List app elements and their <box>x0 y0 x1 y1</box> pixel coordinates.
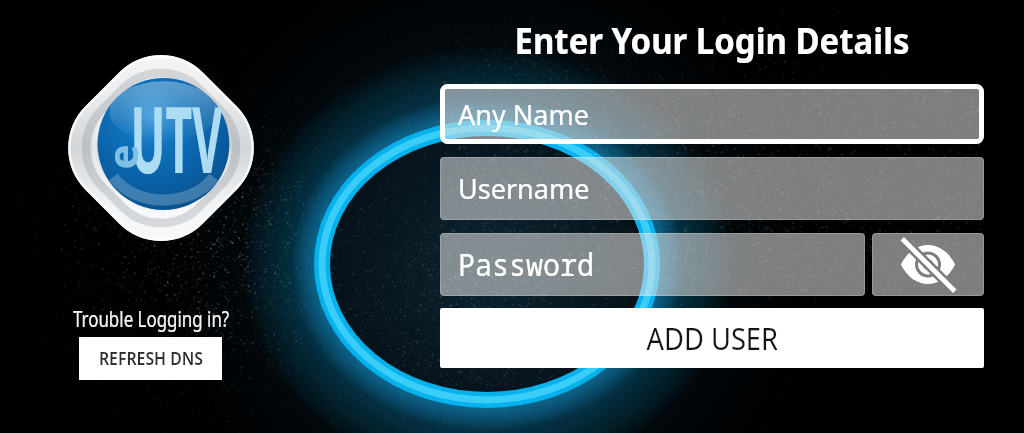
staticText: UTV <box>131 75 222 200</box>
staticText: Any Name <box>458 96 589 133</box>
staticText: Trouble Logging in? <box>73 305 230 334</box>
staticText: ADD USER <box>646 318 778 359</box>
button[interactable]: Show password <box>872 233 984 296</box>
staticText: REFRESH DNS <box>99 347 203 370</box>
staticText: Enter Your Login Details <box>514 16 910 65</box>
staticText: Username <box>458 170 590 207</box>
button[interactable]: Username <box>440 157 984 220</box>
button[interactable]: Any Name <box>440 84 984 144</box>
staticText: e <box>92 143 149 169</box>
staticText: Password <box>458 244 594 285</box>
button[interactable]: REFRESH DNS <box>79 337 222 380</box>
button[interactable]: ADD USER <box>440 308 984 368</box>
button[interactable]: Password <box>440 233 865 296</box>
